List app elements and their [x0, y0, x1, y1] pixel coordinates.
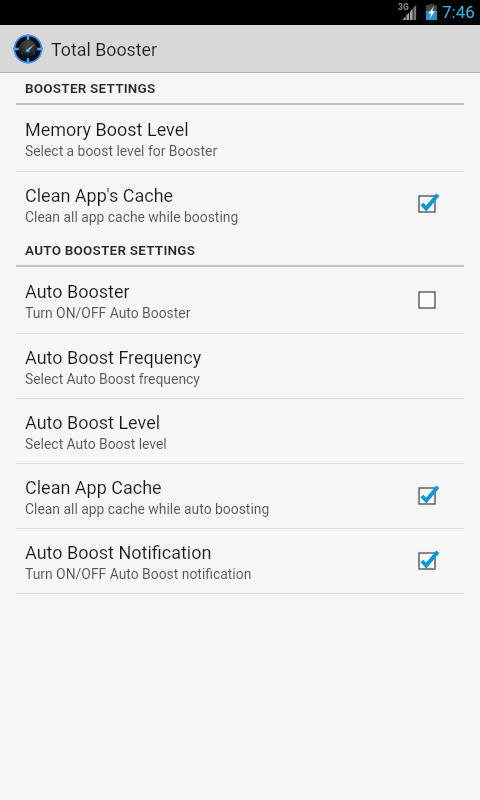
staticText: AUTO BOOSTER SETTINGS [25, 242, 196, 258]
staticText: 7:46 [442, 2, 475, 22]
staticText: BOOSTER SETTINGS [25, 80, 156, 96]
staticText: Total Booster [51, 39, 158, 60]
button[interactable]: Auto Boost Notification [0, 529, 480, 593]
button[interactable]: Auto Boost Level [0, 399, 480, 463]
staticText: Clean App's Cache [25, 185, 174, 206]
staticText: Select a boost level for Booster [25, 143, 218, 159]
button[interactable]: Checked [410, 544, 444, 578]
button[interactable]: Checked [410, 187, 444, 221]
button[interactable]: Auto Boost Frequency [0, 334, 480, 398]
button[interactable]: Clean App Cache [0, 464, 480, 528]
button[interactable]: Checked [410, 479, 444, 513]
button[interactable]: Auto Booster [0, 267, 480, 333]
button[interactable]: Memory Boost Level [0, 105, 480, 171]
staticText: Turn ON/OFF Auto Boost notification [25, 566, 252, 582]
staticText: Clean App Cache [25, 477, 162, 498]
staticText: Memory Boost Level [25, 119, 189, 140]
button[interactable]: Clean App's Cache [0, 172, 480, 235]
staticText: Auto Booster [25, 281, 130, 302]
staticText: 3G [398, 2, 409, 12]
staticText: Select Auto Boost frequency [25, 371, 200, 387]
staticText: Auto Boost Frequency [25, 347, 202, 368]
button[interactable]: Unchecked [410, 283, 444, 317]
staticText: Auto Boost Level [25, 412, 161, 433]
staticText: Clean all app cache while boosting [25, 209, 239, 225]
staticText: Auto Boost Notification [25, 542, 212, 563]
staticText: Select Auto Boost level [25, 436, 167, 452]
staticText: Turn ON/OFF Auto Booster [25, 305, 191, 321]
staticText: Clean all app cache while auto boosting [25, 501, 270, 517]
